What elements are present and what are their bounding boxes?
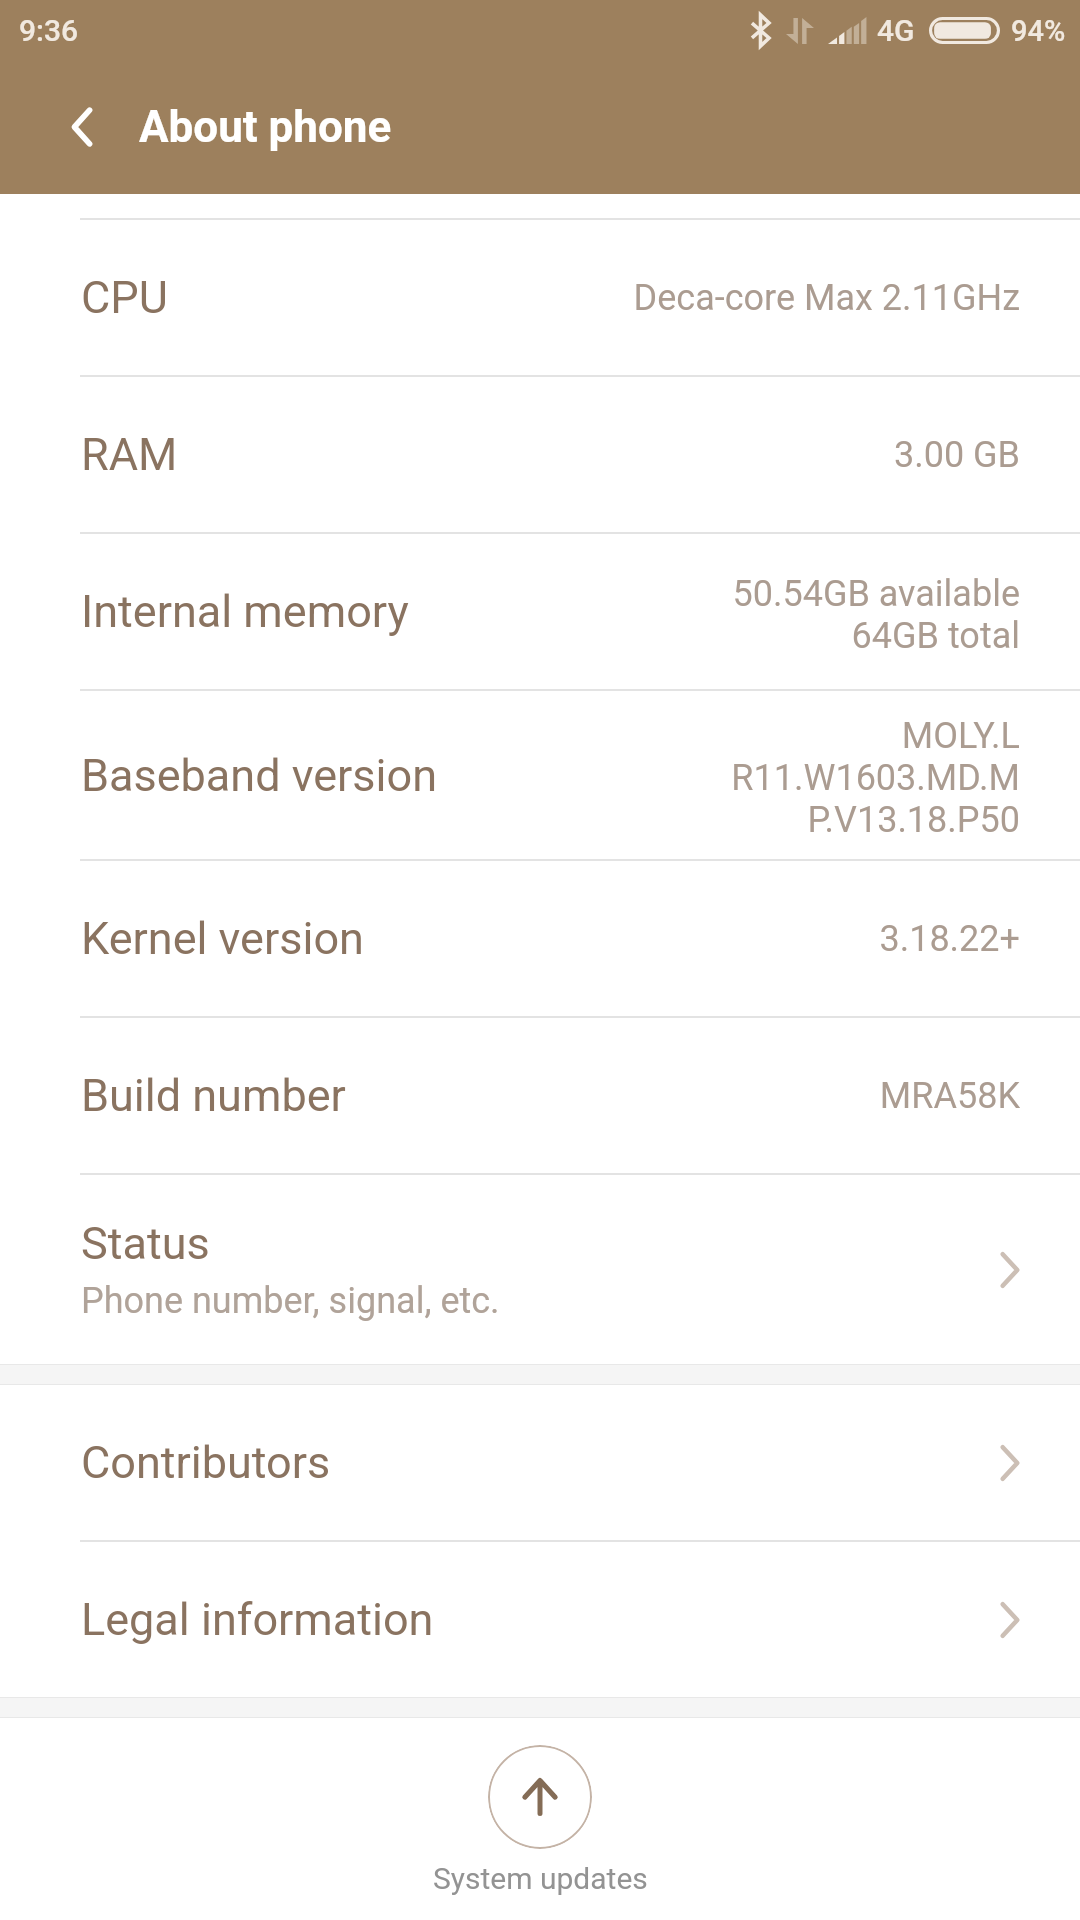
- staticText: CPU: [81, 271, 168, 324]
- staticText: Phone number, signal, etc.: [81, 1280, 500, 1322]
- staticText: RAM: [81, 428, 178, 481]
- button[interactable]: Legal information: [0, 1542, 1080, 1697]
- button[interactable]: Status: [0, 1175, 1080, 1364]
- staticText: Internal memory: [81, 585, 409, 638]
- staticText: Deca-core Max 2.11GHz: [178, 277, 1020, 319]
- staticText: Legal information: [81, 1593, 434, 1646]
- staticText: 94%: [1011, 14, 1066, 48]
- staticText: 50.54GB available 64GB total: [419, 573, 1020, 657]
- staticText: Build number: [81, 1069, 346, 1122]
- staticText: MOLY.L R11.W1603.MD.M P.V13.18.P50: [448, 715, 1020, 841]
- button[interactable]: RAM: [0, 377, 1080, 532]
- staticText: About phone: [139, 101, 392, 153]
- staticText: 4G: [877, 13, 915, 48]
- staticText: System updates: [433, 1861, 648, 1896]
- staticText: Kernel version: [81, 912, 364, 965]
- button[interactable]: System updates: [0, 1718, 1080, 1920]
- staticText: MRA58K: [356, 1075, 1020, 1117]
- staticText: Contributors: [81, 1436, 331, 1489]
- button[interactable]: Contributors: [0, 1385, 1080, 1540]
- button[interactable]: Baseband version: [0, 691, 1080, 859]
- button[interactable]: Build number: [0, 1018, 1080, 1173]
- button[interactable]: Internal memory: [0, 534, 1080, 689]
- button[interactable]: CPU: [0, 220, 1080, 375]
- staticText: 9:36: [19, 13, 79, 48]
- staticText: Status: [81, 1217, 210, 1270]
- button[interactable]: Back: [0, 60, 139, 194]
- staticText: Baseband version: [81, 749, 438, 802]
- staticText: 3.18.22+: [374, 918, 1020, 960]
- staticText: 3.00 GB: [188, 434, 1020, 476]
- button[interactable]: Kernel version: [0, 861, 1080, 1016]
